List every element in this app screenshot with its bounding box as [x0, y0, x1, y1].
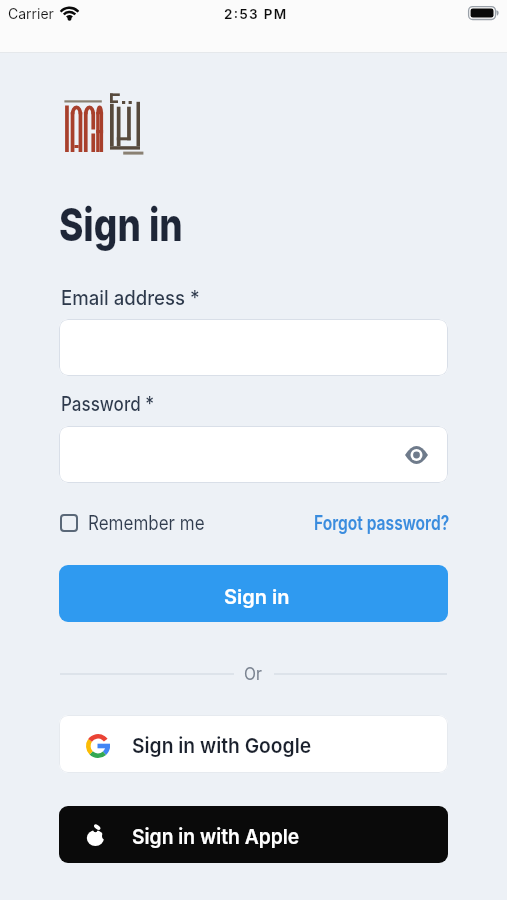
button[interactable]: Sign in with Apple [59, 806, 448, 863]
staticText: Sign in [224, 585, 290, 609]
button[interactable] [59, 426, 448, 483]
staticText: Sign in with Apple [132, 824, 299, 849]
staticText: Password * [61, 392, 154, 416]
button[interactable]: Forgot password? [314, 511, 450, 535]
staticText: 2:53 PM [224, 6, 288, 22]
button[interactable]: Sign in [59, 565, 448, 622]
button[interactable] [60, 514, 78, 532]
staticText: Email address * [61, 286, 200, 310]
staticText: Sign in with Google [132, 733, 311, 758]
button[interactable]: Sign in with Google [59, 715, 448, 773]
button[interactable]: Remember me [88, 511, 205, 535]
button[interactable] [398, 438, 437, 472]
staticText: Sign in [59, 197, 183, 251]
staticText: Or [244, 664, 262, 685]
staticText: Carrier [8, 5, 54, 22]
button[interactable] [59, 319, 448, 376]
